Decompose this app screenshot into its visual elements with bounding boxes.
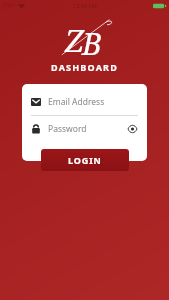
button[interactable]: LOGIN (41, 149, 129, 171)
button[interactable]: Show password (126, 123, 138, 135)
staticText: Email Address (48, 96, 105, 108)
button[interactable]: Password (22, 116, 147, 142)
staticText: LOGIN (68, 154, 102, 166)
staticText: Password (48, 123, 87, 135)
staticText: 12:08 PM (73, 2, 97, 9)
staticText: Claro (3, 2, 16, 9)
staticText: Z (65, 19, 84, 61)
staticText: DASHBOARD (51, 61, 118, 73)
staticText: B (82, 23, 102, 64)
button[interactable]: Email Address (22, 89, 147, 115)
